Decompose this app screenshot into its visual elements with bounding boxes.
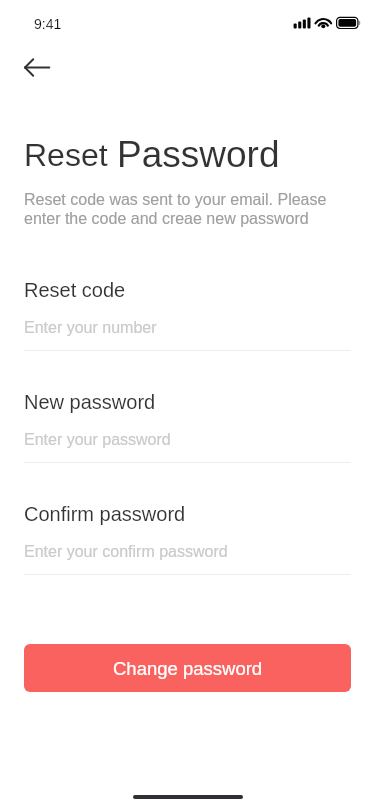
- staticText: Password: [117, 134, 280, 175]
- button[interactable]: New password: [24, 391, 351, 463]
- button[interactable]: Change password: [24, 644, 351, 692]
- staticText: Enter your password: [24, 431, 171, 449]
- staticText: Reset: [24, 137, 117, 173]
- button[interactable]: Back: [14, 48, 60, 94]
- staticText: Change password: [113, 658, 263, 679]
- staticText: Enter your confirm password: [24, 543, 228, 561]
- staticText: Confirm password: [24, 503, 186, 525]
- staticText: 9:41: [34, 16, 62, 32]
- button[interactable]: Reset code: [24, 279, 351, 351]
- button[interactable]: Confirm password: [24, 503, 351, 575]
- staticText: Reset code: [24, 279, 126, 301]
- staticText: New password: [24, 391, 156, 413]
- staticText: Enter your number: [24, 319, 157, 337]
- staticText: Reset code was sent to your email. Pleas…: [24, 191, 334, 227]
